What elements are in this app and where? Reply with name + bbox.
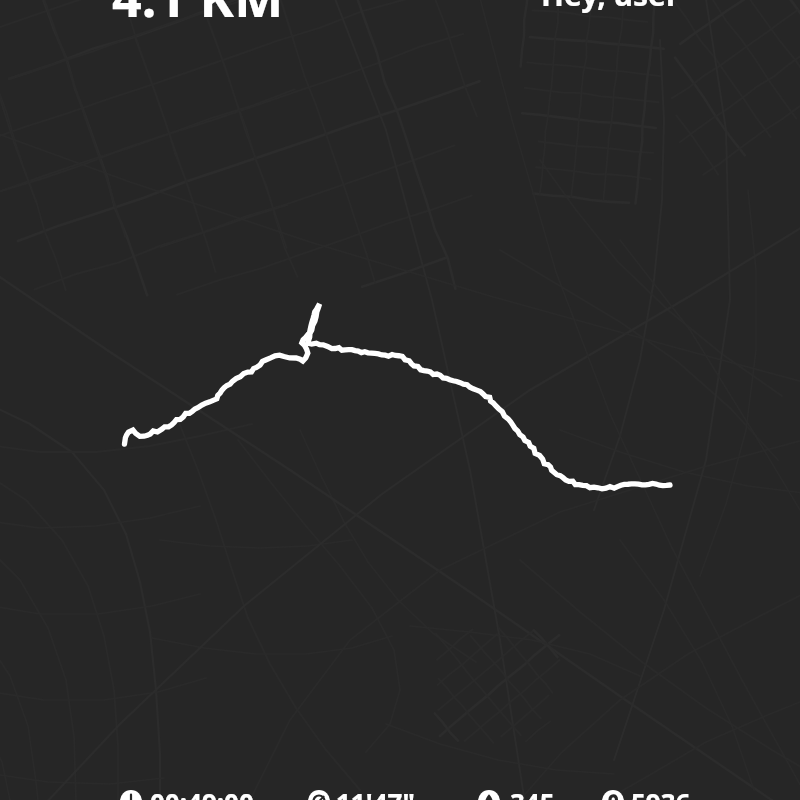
staticText: 345 xyxy=(510,785,555,800)
button[interactable]: 11'47" xyxy=(336,785,415,800)
staticText: Hey, user xyxy=(541,0,680,15)
button[interactable]: Calories xyxy=(478,790,500,800)
button[interactable]: 5936 xyxy=(631,785,691,800)
button[interactable]: 345 xyxy=(510,785,555,800)
button[interactable]: 4.1 KM xyxy=(112,0,284,32)
button[interactable]: Duration xyxy=(120,790,142,800)
staticText: 00:49:00 xyxy=(150,785,254,800)
staticText: 5936 xyxy=(631,785,691,800)
staticText: 11'47" xyxy=(336,785,415,800)
staticText: 4.1 KM xyxy=(112,0,284,32)
button[interactable]: Steps xyxy=(602,790,624,800)
button[interactable]: Hey, user xyxy=(541,0,680,15)
button[interactable]: Pace xyxy=(308,790,330,800)
button[interactable]: 00:49:00 xyxy=(150,785,254,800)
